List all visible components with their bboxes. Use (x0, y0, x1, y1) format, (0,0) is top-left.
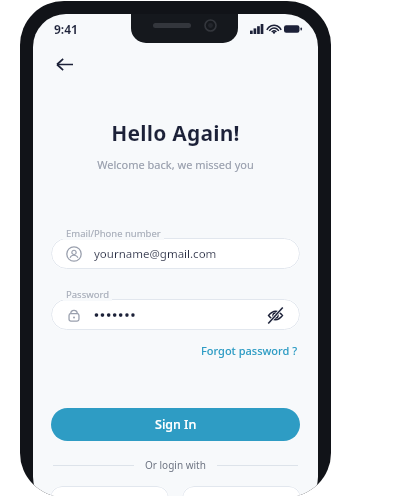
button[interactable]: ••••••• (51, 299, 300, 330)
button[interactable]: Sign In (51, 408, 300, 441)
staticText: Password (66, 288, 109, 301)
button[interactable]: Sign in with Facebook (182, 486, 301, 496)
button[interactable]: Back (47, 47, 81, 81)
staticText: 9:41 (54, 21, 78, 37)
staticText: Email/Phone number (66, 227, 161, 240)
staticText: Forgot password ? (201, 343, 298, 358)
button[interactable]: yourname@gmail.com (51, 238, 300, 269)
button[interactable]: Forgot password ? (199, 340, 300, 361)
staticText: Sign In (155, 416, 197, 433)
staticText: Hello Again! (33, 119, 318, 148)
button[interactable]: Show password (264, 304, 286, 326)
staticText: Welcome back, we missed you (33, 157, 318, 172)
staticText: Or login with (145, 458, 206, 472)
staticText: ••••••• (94, 306, 137, 324)
button[interactable]: Sign in with Google (50, 486, 169, 496)
staticText: yourname@gmail.com (94, 246, 217, 262)
